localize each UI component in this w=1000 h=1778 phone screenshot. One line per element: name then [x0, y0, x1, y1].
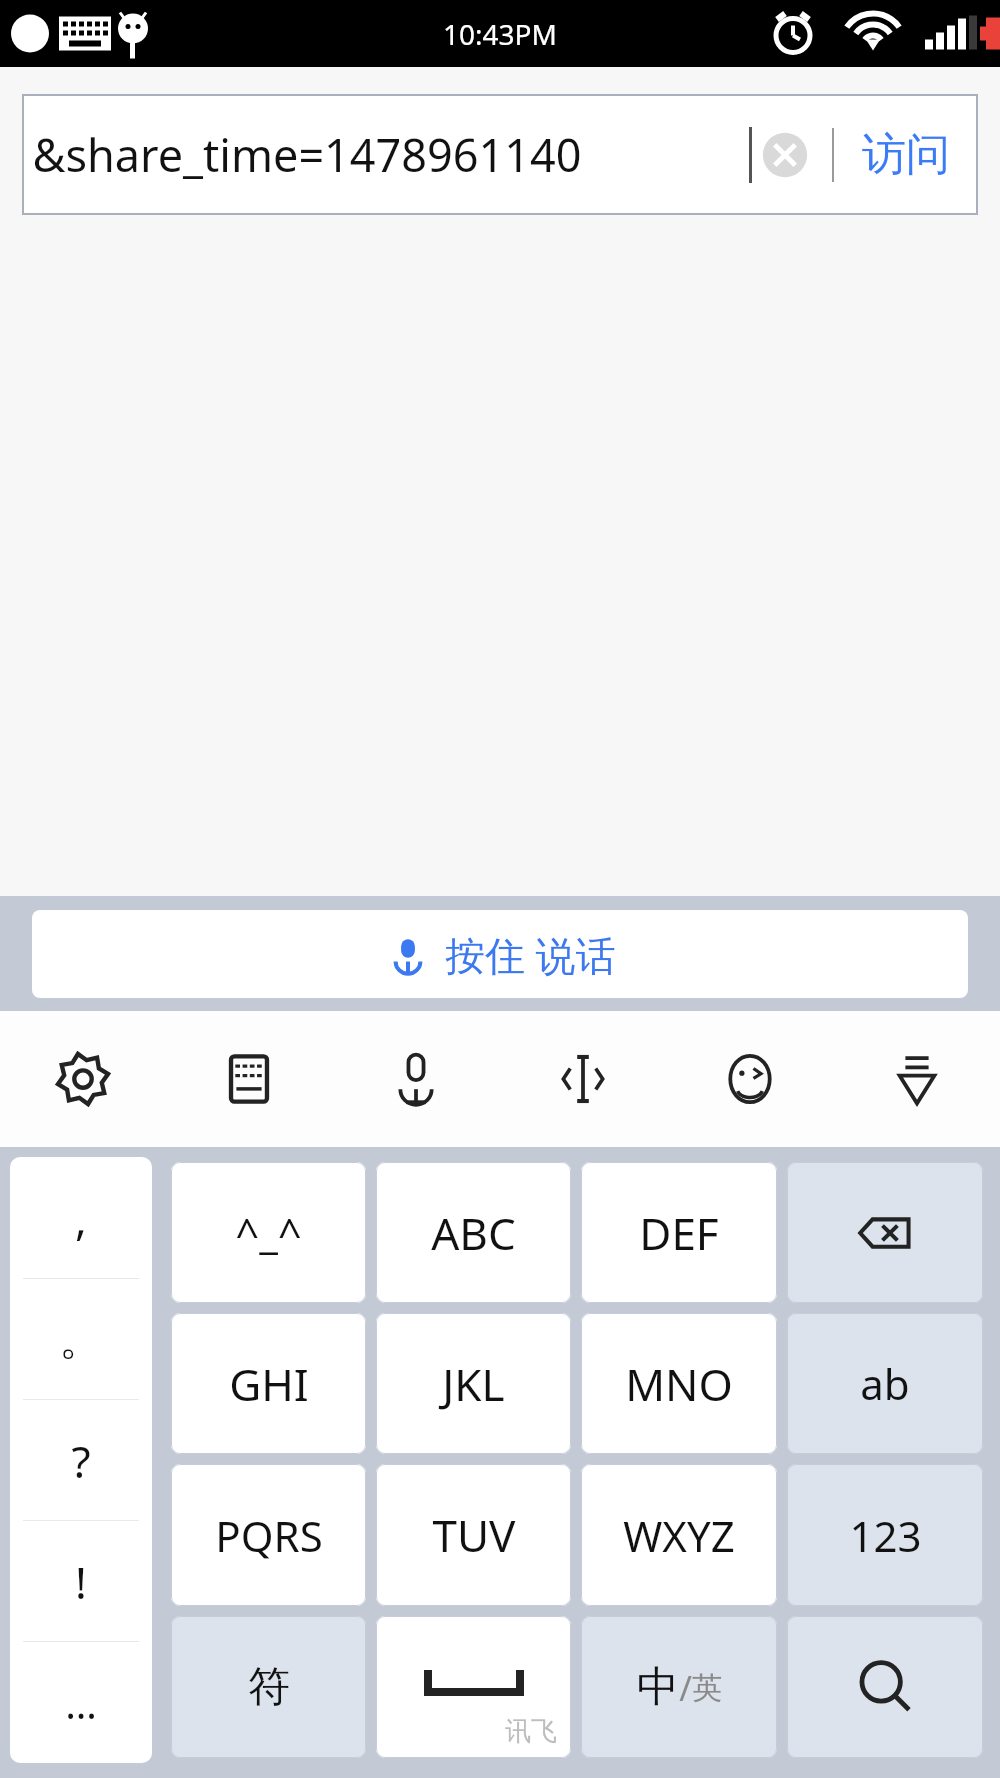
button[interactable]: 符: [171, 1616, 366, 1758]
button[interactable]: Space: [376, 1616, 571, 1758]
staticText: 讯飞: [505, 1715, 557, 1748]
button[interactable]: Keyboard layout: [166, 1011, 332, 1147]
button[interactable]: Settings: [0, 1011, 166, 1147]
staticText: 符: [248, 1661, 290, 1714]
button[interactable]: MNO: [581, 1313, 777, 1454]
staticText: 123: [849, 1507, 922, 1564]
button[interactable]: ,: [10, 1157, 152, 1279]
staticText: !: [75, 1552, 87, 1612]
button[interactable]: 123: [787, 1464, 983, 1606]
button[interactable]: 中: [581, 1616, 777, 1758]
staticText: 按住 说话: [445, 927, 616, 982]
button[interactable]: GHI: [171, 1313, 366, 1454]
button[interactable]: !: [10, 1521, 152, 1642]
button[interactable]: Delete: [787, 1162, 983, 1303]
button[interactable]: ?: [10, 1400, 152, 1521]
button[interactable]: TUV: [376, 1464, 571, 1606]
button[interactable]: Voice input: [332, 1011, 499, 1147]
staticText: ABC: [431, 1203, 516, 1263]
button[interactable]: WXYZ: [581, 1464, 777, 1606]
staticText: ^_^: [235, 1204, 302, 1261]
staticText: PQRS: [215, 1507, 323, 1564]
staticText: DEF: [639, 1203, 719, 1263]
button[interactable]: ^_^: [171, 1162, 366, 1303]
button[interactable]: Edit cursor: [499, 1011, 666, 1147]
button[interactable]: Emoji: [666, 1011, 833, 1147]
button[interactable]: &share_time=1478961140: [22, 94, 978, 215]
button[interactable]: 访问: [834, 94, 978, 215]
button[interactable]: ab: [787, 1313, 983, 1454]
button[interactable]: Hide keyboard: [833, 1011, 1000, 1147]
staticText: ?: [71, 1431, 91, 1491]
staticText: GHI: [229, 1354, 309, 1414]
staticText: ab: [860, 1355, 910, 1412]
staticText: …: [65, 1676, 97, 1730]
button[interactable]: Search: [787, 1616, 983, 1758]
button[interactable]: Clear: [758, 128, 812, 182]
button[interactable]: DEF: [581, 1162, 777, 1303]
button[interactable]: 。: [10, 1279, 152, 1400]
staticText: &share_time=1478961140: [32, 124, 582, 185]
button[interactable]: JKL: [376, 1313, 571, 1454]
staticText: 10:43PM: [443, 15, 557, 53]
staticText: 访问: [862, 127, 950, 182]
button[interactable]: PQRS: [171, 1464, 366, 1606]
staticText: 英: [692, 1669, 722, 1707]
staticText: /: [679, 1665, 692, 1711]
staticText: MNO: [625, 1354, 733, 1414]
staticText: ,: [75, 1188, 87, 1248]
button[interactable]: …: [10, 1642, 152, 1763]
staticText: JKL: [442, 1354, 505, 1414]
staticText: WXYZ: [623, 1507, 735, 1564]
staticText: TUV: [432, 1505, 516, 1565]
button[interactable]: ABC: [376, 1162, 571, 1303]
button[interactable]: 按住 说话: [32, 910, 968, 998]
staticText: 。: [59, 1312, 103, 1367]
staticText: 中: [637, 1661, 679, 1714]
